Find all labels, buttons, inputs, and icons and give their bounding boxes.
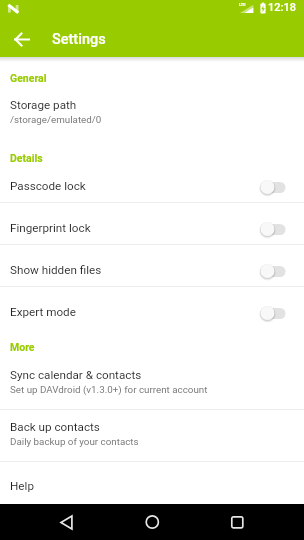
button[interactable]: Back up contacts bbox=[10, 416, 100, 438]
button[interactable]: Passcode lock bbox=[10, 175, 86, 197]
button[interactable]: Fingerprint lock bbox=[10, 217, 91, 239]
staticText: Help bbox=[10, 479, 34, 493]
staticText: Show hidden files bbox=[10, 263, 102, 277]
button[interactable]: Sync calendar & contacts bbox=[10, 364, 142, 386]
staticText: Fingerprint lock bbox=[10, 221, 91, 235]
staticText: Back up contacts bbox=[10, 420, 100, 434]
staticText: Set up DAVdroid (v1.3.0+) for current ac… bbox=[10, 384, 208, 395]
staticText: /storage/emulated/0 bbox=[10, 114, 102, 125]
button[interactable]: Help bbox=[10, 475, 34, 497]
button[interactable]: Show hidden files bbox=[10, 259, 102, 281]
staticText: Daily backup of your contacts bbox=[10, 436, 139, 447]
staticText: Settings bbox=[52, 31, 106, 48]
staticText: LTE bbox=[239, 2, 246, 7]
button[interactable] bbox=[55, 507, 79, 531]
staticText: Sync calendar & contacts bbox=[10, 368, 142, 382]
button[interactable]: Storage path bbox=[10, 94, 77, 116]
staticText: Passcode lock bbox=[10, 179, 86, 193]
button[interactable] bbox=[140, 507, 164, 531]
staticText: Storage path bbox=[10, 98, 77, 112]
button[interactable]: Expert mode bbox=[10, 301, 76, 323]
staticText: Details bbox=[10, 152, 43, 164]
button[interactable] bbox=[255, 301, 291, 325]
staticText: Expert mode bbox=[10, 305, 76, 319]
staticText: 12:18 bbox=[268, 1, 296, 14]
button[interactable] bbox=[255, 175, 291, 199]
button[interactable] bbox=[8, 25, 36, 53]
button[interactable] bbox=[225, 507, 249, 531]
button[interactable] bbox=[255, 259, 291, 283]
staticText: General bbox=[10, 72, 47, 84]
staticText: More bbox=[10, 341, 35, 353]
button[interactable] bbox=[255, 217, 291, 241]
